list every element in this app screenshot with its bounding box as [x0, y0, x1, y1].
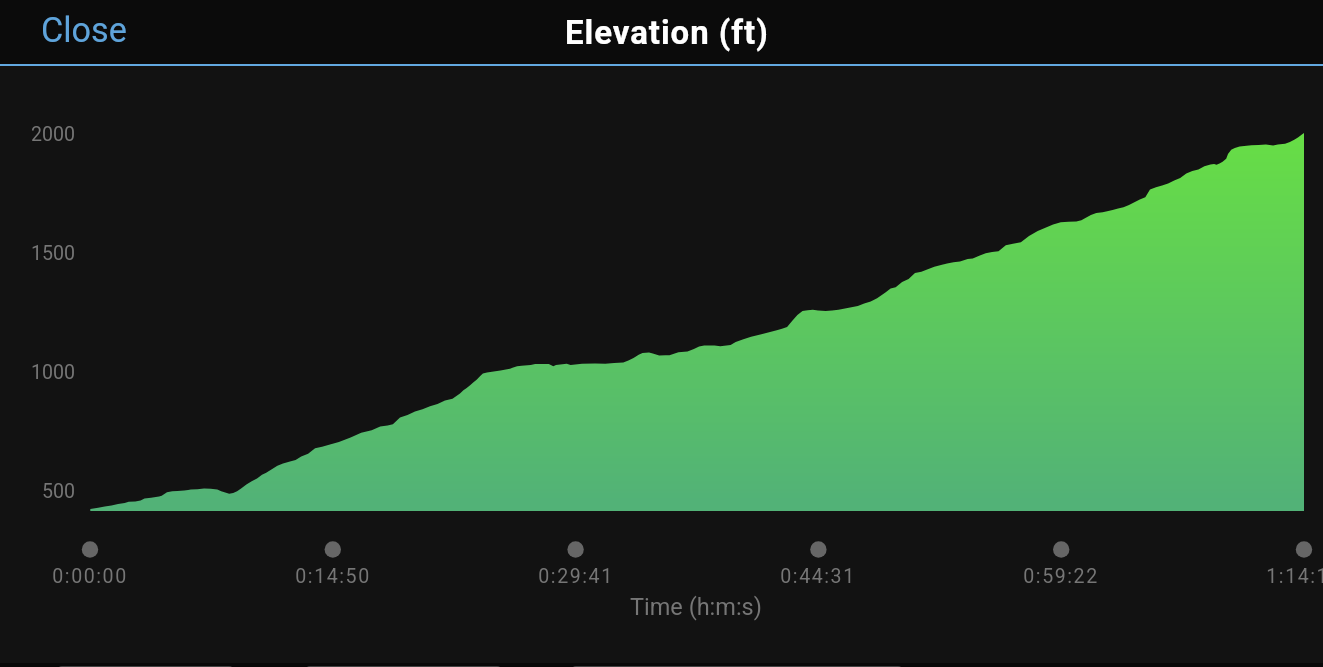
- button[interactable]: Stat card: [572, 666, 902, 667]
- button[interactable]: Close: [0, 0, 147, 60]
- staticText: Elevation (ft): [565, 13, 769, 52]
- staticText: 2000: [0, 123, 75, 146]
- other: Elevation profile chart: [0, 0, 1323, 667]
- staticText: 0:59:22: [941, 565, 1181, 588]
- button[interactable]: Stat card: [306, 666, 501, 667]
- staticText: 0:14:50: [213, 565, 453, 588]
- staticText: 0:44:31: [698, 565, 938, 588]
- staticText: 1500: [0, 242, 75, 265]
- staticText: Time (h:m:s): [630, 593, 762, 621]
- staticText: Close: [41, 10, 127, 50]
- staticText: 1000: [0, 361, 75, 384]
- staticText: 1:14:13: [1184, 565, 1323, 588]
- staticText: 0:29:41: [456, 565, 696, 588]
- staticText: 0:00:00: [0, 565, 210, 588]
- button[interactable]: Stat card: [58, 666, 233, 667]
- staticText: 500: [0, 480, 75, 503]
